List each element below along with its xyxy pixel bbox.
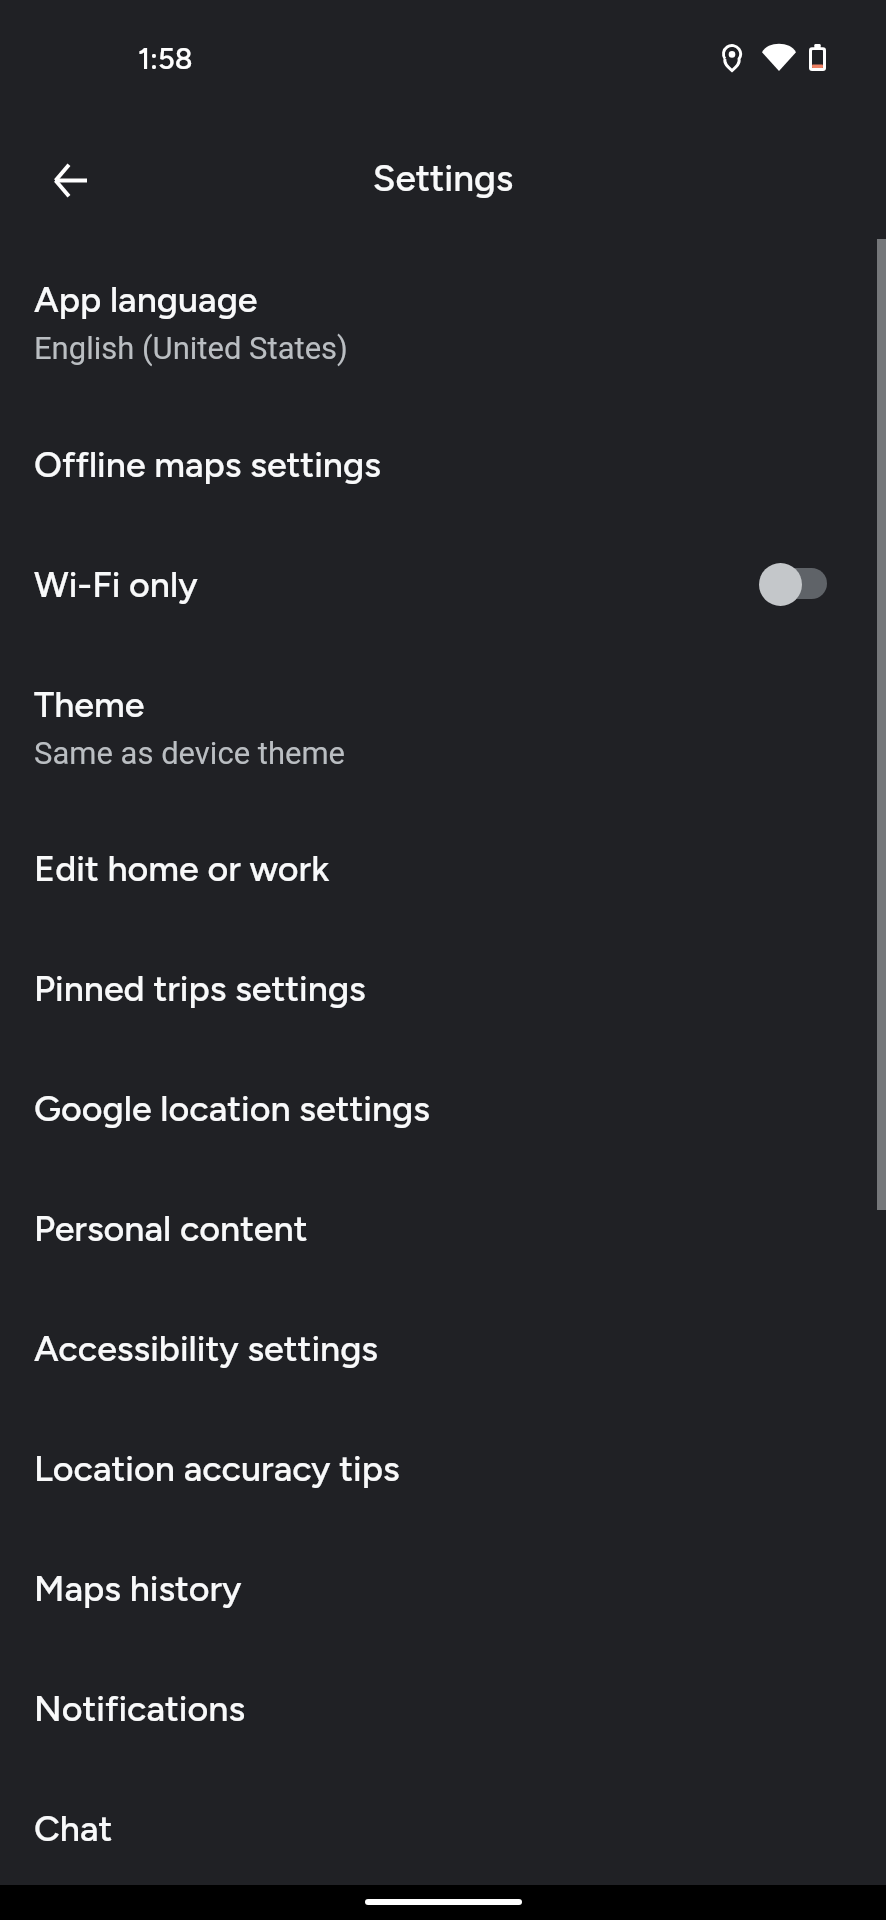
button[interactable] <box>0 941 886 1061</box>
button[interactable]: Wi-Fi only <box>735 544 845 624</box>
staticText: Pinned trips settings <box>34 967 366 1010</box>
staticText: App language <box>34 278 258 321</box>
button[interactable] <box>0 1781 886 1901</box>
staticText: 1:58 <box>138 41 193 76</box>
staticText: Theme <box>34 683 145 726</box>
button[interactable] <box>0 1661 886 1781</box>
staticText: Same as device theme <box>34 735 346 771</box>
staticText: Settings <box>0 156 886 200</box>
staticText: Accessibility settings <box>34 1327 379 1370</box>
button[interactable] <box>0 1541 886 1661</box>
button[interactable] <box>0 1421 886 1541</box>
staticText: Google location settings <box>34 1087 430 1130</box>
staticText: Edit home or work <box>34 847 330 890</box>
staticText: Notifications <box>34 1687 246 1730</box>
staticText: English (United States) <box>34 330 348 366</box>
button[interactable] <box>0 1061 886 1181</box>
staticText: Wi-Fi only <box>34 563 198 606</box>
button[interactable]: Navigate up <box>26 136 114 224</box>
staticText: Chat <box>34 1807 113 1850</box>
button[interactable] <box>0 252 886 416</box>
staticText: Personal content <box>34 1207 308 1250</box>
button[interactable] <box>0 657 886 821</box>
button[interactable] <box>0 1181 886 1301</box>
staticText: Offline maps settings <box>34 443 381 486</box>
staticText: Location accuracy tips <box>34 1447 400 1490</box>
button[interactable] <box>0 537 886 657</box>
staticText: Maps history <box>34 1567 242 1610</box>
button[interactable] <box>0 822 886 942</box>
button[interactable] <box>0 417 886 537</box>
button[interactable] <box>0 1301 886 1421</box>
